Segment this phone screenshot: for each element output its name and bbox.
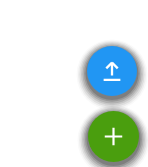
button[interactable]: Upload (87, 46, 137, 96)
button[interactable]: Add (88, 111, 139, 162)
